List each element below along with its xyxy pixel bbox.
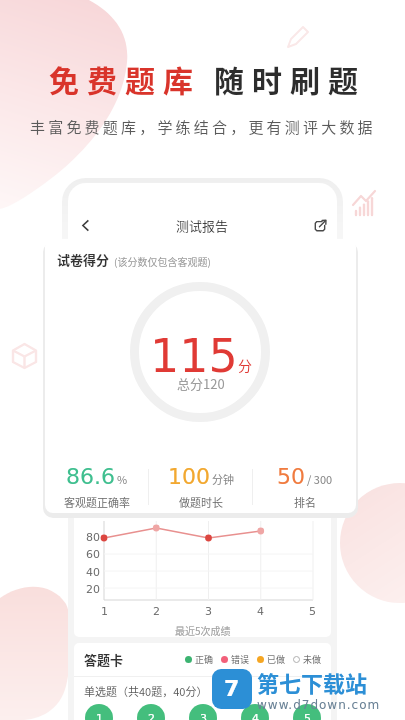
staticText: 7	[224, 676, 240, 702]
button[interactable]: 3	[189, 704, 217, 720]
staticText: 已做	[267, 653, 286, 666]
staticText: 随时刷题	[214, 57, 366, 100]
staticText: 分钟	[212, 471, 234, 487]
staticText: 2	[148, 712, 155, 720]
staticText: 总分120	[177, 374, 225, 393]
staticText: 100	[168, 464, 210, 490]
button[interactable]: 1	[85, 704, 113, 720]
staticText: 免费题库	[49, 57, 201, 100]
staticText: 1	[96, 712, 103, 720]
staticText: 86.6	[66, 464, 115, 490]
staticText: 3	[205, 605, 212, 618]
staticText: www.d7down.com	[257, 698, 381, 712]
button[interactable]: Back	[68, 208, 102, 242]
staticText: 客观题正确率	[87, 504, 147, 518]
staticText: 单选题（共40题，40分）	[84, 683, 208, 699]
staticText: 4	[252, 712, 259, 720]
staticText: 2	[153, 605, 160, 618]
staticText: 20	[86, 583, 100, 596]
staticText: / 300	[307, 471, 333, 487]
button[interactable]: 2	[137, 704, 165, 720]
staticText: 最近5次成绩	[175, 623, 231, 637]
staticText: 分	[238, 355, 252, 375]
staticText: 3	[200, 712, 207, 720]
staticText: 做题时长	[182, 504, 222, 518]
staticText: 80	[86, 531, 100, 544]
staticText: 1	[101, 605, 108, 618]
staticText: 排名	[294, 494, 316, 510]
staticText: 正确	[195, 653, 214, 666]
staticText: 40	[86, 566, 100, 579]
button[interactable]: 4	[241, 704, 269, 720]
staticText: 测试报告	[176, 216, 229, 235]
staticText: 50	[277, 464, 305, 490]
staticText: 错误	[231, 653, 250, 666]
button[interactable]: 5	[293, 704, 321, 720]
staticText: 第七下载站	[257, 666, 368, 698]
staticText: 试卷得分	[57, 250, 110, 269]
staticText: 4	[257, 605, 264, 618]
button[interactable]: Share	[303, 208, 337, 242]
staticText: 做题时长	[179, 494, 223, 510]
staticText: 丰富免费题库，学练结合，更有测评大数据	[30, 116, 376, 138]
staticText: 未做	[303, 653, 322, 666]
staticText: 客观题正确率	[64, 494, 130, 510]
staticText: 排名	[278, 504, 298, 518]
staticText: %	[117, 471, 128, 487]
staticText: 60	[86, 548, 100, 561]
staticText: 115	[150, 329, 238, 381]
staticText: 答题卡	[84, 650, 124, 669]
staticText: 5	[304, 712, 311, 720]
staticText: (该分数仅包含客观题)	[114, 254, 211, 268]
staticText: 5	[309, 605, 316, 618]
